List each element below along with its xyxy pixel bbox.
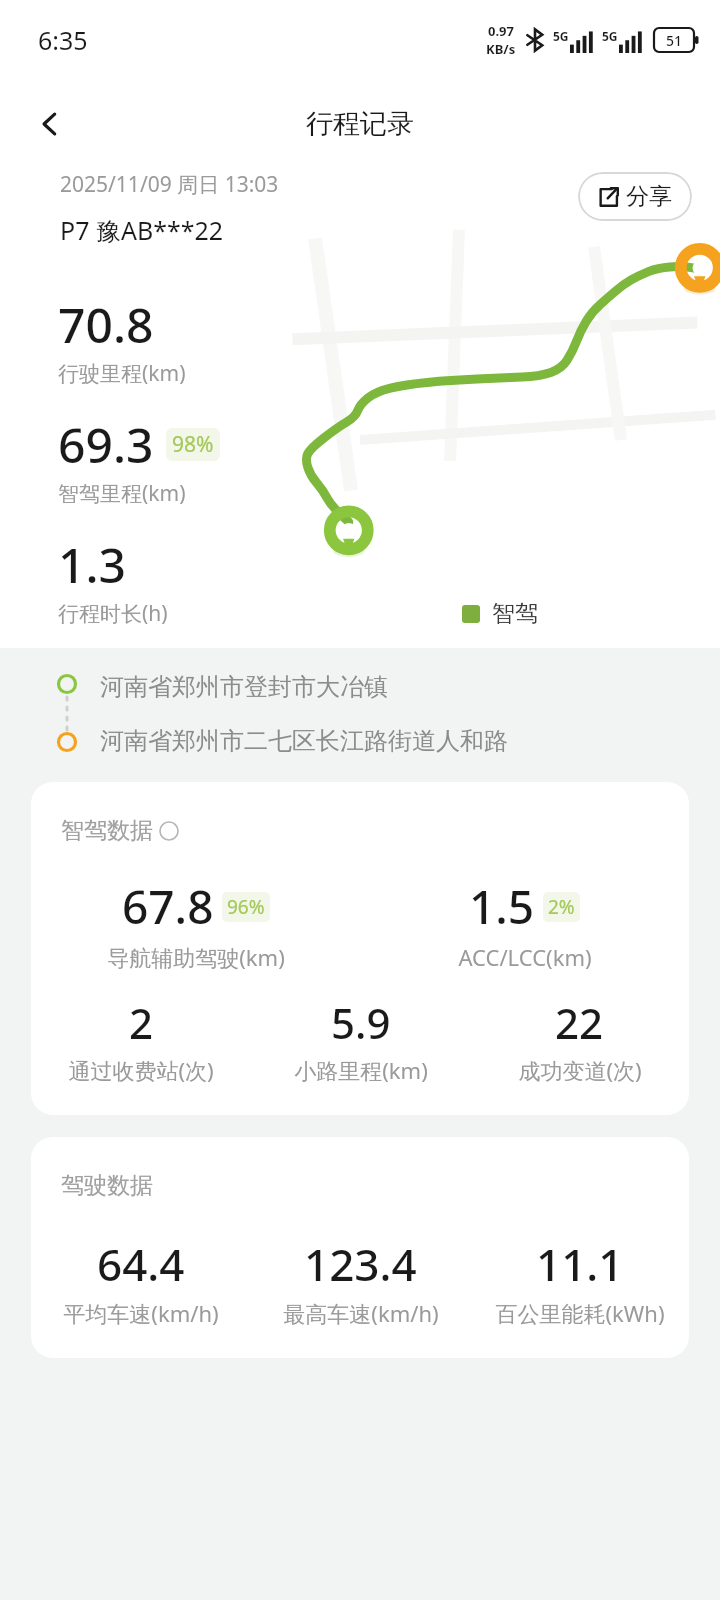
staticText: P7 豫AB***22 (60, 213, 224, 247)
staticText: 智驾 (492, 599, 538, 628)
staticText: 2025/11/09 周日 13:03 (60, 170, 279, 199)
button[interactable]: 驾驶数据 (31, 1137, 689, 1358)
staticText: 通过收费站(次) (68, 1055, 214, 1085)
button[interactable]: 智驾数据 (31, 782, 689, 1115)
staticText: 河南省郑州市登封市大冶镇 (100, 672, 388, 702)
staticText: KB/s (486, 40, 516, 58)
staticText: ACC/LCC(km) (458, 942, 592, 972)
staticText: 70.8 (58, 292, 154, 357)
staticText: 智驾数据 (61, 816, 153, 845)
button[interactable]: 分享 (578, 172, 692, 221)
staticText: 驾驶数据 (61, 1171, 153, 1200)
staticText: 河南省郑州市二七区长江路街道人和路 (100, 726, 508, 756)
staticText: 最高车速(km/h) (283, 1298, 439, 1328)
staticText: 98% (172, 430, 214, 459)
staticText: 分享 (626, 182, 672, 211)
staticText: 0.97 (488, 22, 514, 40)
staticText: 64.4 (97, 1234, 185, 1294)
staticText: 5G (553, 28, 569, 44)
staticText: 行程记录 (306, 107, 414, 141)
staticText: 行程时长(h) (58, 599, 168, 628)
staticText: 5G (602, 28, 618, 44)
button[interactable]: Back (22, 96, 78, 152)
staticText: 6:35 (38, 23, 88, 57)
staticText: 51 (666, 31, 683, 50)
staticText: 导航辅助驾驶(km) (107, 942, 285, 972)
staticText: 1.3 (58, 532, 126, 597)
staticText: 2% (548, 894, 575, 920)
staticText: 5.9 (331, 994, 391, 1051)
staticText: 成功变道(次) (518, 1055, 642, 1085)
staticText: 平均车速(km/h) (63, 1298, 219, 1328)
staticText: 行驶里程(km) (58, 359, 186, 388)
staticText: 123.4 (304, 1234, 417, 1294)
staticText: 小路里程(km) (294, 1055, 428, 1085)
staticText: 67.8 (122, 875, 214, 938)
staticText: 1.5 (469, 875, 535, 938)
staticText: 96% (227, 894, 265, 920)
staticText: 22 (555, 994, 604, 1051)
staticText: 11.1 (536, 1234, 624, 1294)
staticText: 69.3 (58, 412, 154, 477)
staticText: 智驾里程(km) (58, 479, 186, 508)
staticText: 2 (129, 994, 154, 1051)
staticText: 百公里能耗(kWh) (495, 1298, 665, 1328)
